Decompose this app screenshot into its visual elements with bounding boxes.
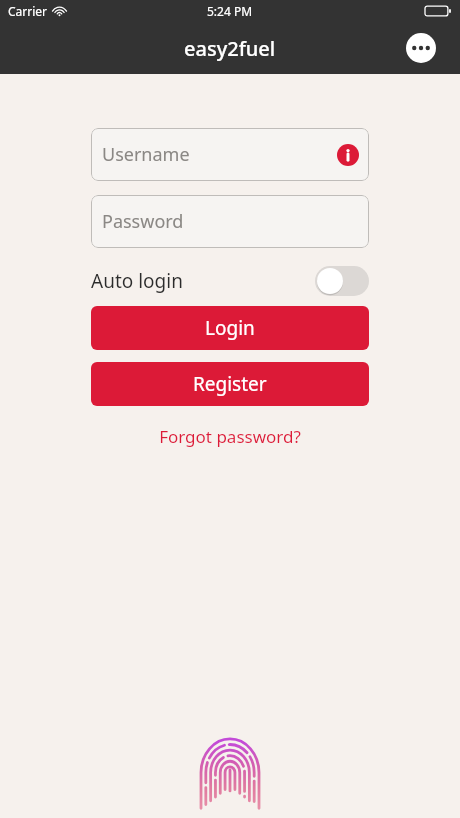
staticText: 5:24 PM — [207, 3, 253, 19]
staticText: Auto login — [91, 268, 183, 294]
button[interactable]: Password — [91, 195, 369, 248]
button[interactable]: Information — [337, 144, 359, 166]
button[interactable]: Login — [91, 306, 369, 350]
button[interactable]: Username — [91, 128, 369, 181]
button[interactable]: Fingerprint login — [201, 742, 259, 810]
button[interactable]: More options — [406, 33, 436, 63]
staticText: Carrier — [8, 3, 48, 19]
staticText: easy2fuel — [184, 35, 276, 62]
staticText: Login — [205, 315, 255, 341]
staticText: Forgot password? — [159, 425, 301, 448]
button[interactable]: Register — [91, 362, 369, 406]
staticText: Register — [193, 371, 267, 397]
button[interactable]: Auto login — [91, 265, 369, 297]
staticText: Username — [102, 142, 190, 167]
button[interactable]: Forgot password? — [91, 425, 369, 448]
staticText: Password — [102, 209, 184, 234]
